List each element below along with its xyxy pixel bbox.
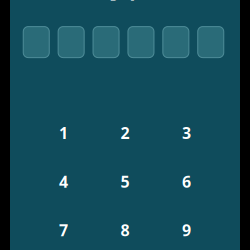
staticText: 1 xyxy=(59,122,68,143)
button[interactable]: 3 xyxy=(156,109,217,157)
button[interactable]: 8 xyxy=(94,206,156,250)
staticText: 8 xyxy=(120,219,129,241)
button[interactable]: 6 xyxy=(156,157,217,206)
staticText: 9 xyxy=(182,219,191,241)
button[interactable]: 5 xyxy=(94,157,156,206)
staticText: 2 xyxy=(120,122,129,143)
staticText: 5 xyxy=(120,171,129,192)
staticText: 7 xyxy=(59,219,68,241)
button[interactable]: 2 xyxy=(94,109,156,157)
button[interactable]: 9 xyxy=(156,206,217,250)
staticText: 3 xyxy=(182,122,191,143)
button[interactable]: 7 xyxy=(33,206,94,250)
button[interactable]: 4 xyxy=(33,157,94,206)
staticText: 6 xyxy=(182,171,191,192)
button[interactable]: 1 xyxy=(33,109,94,157)
staticText: Key pad xyxy=(80,0,173,2)
staticText: 4 xyxy=(59,171,68,192)
